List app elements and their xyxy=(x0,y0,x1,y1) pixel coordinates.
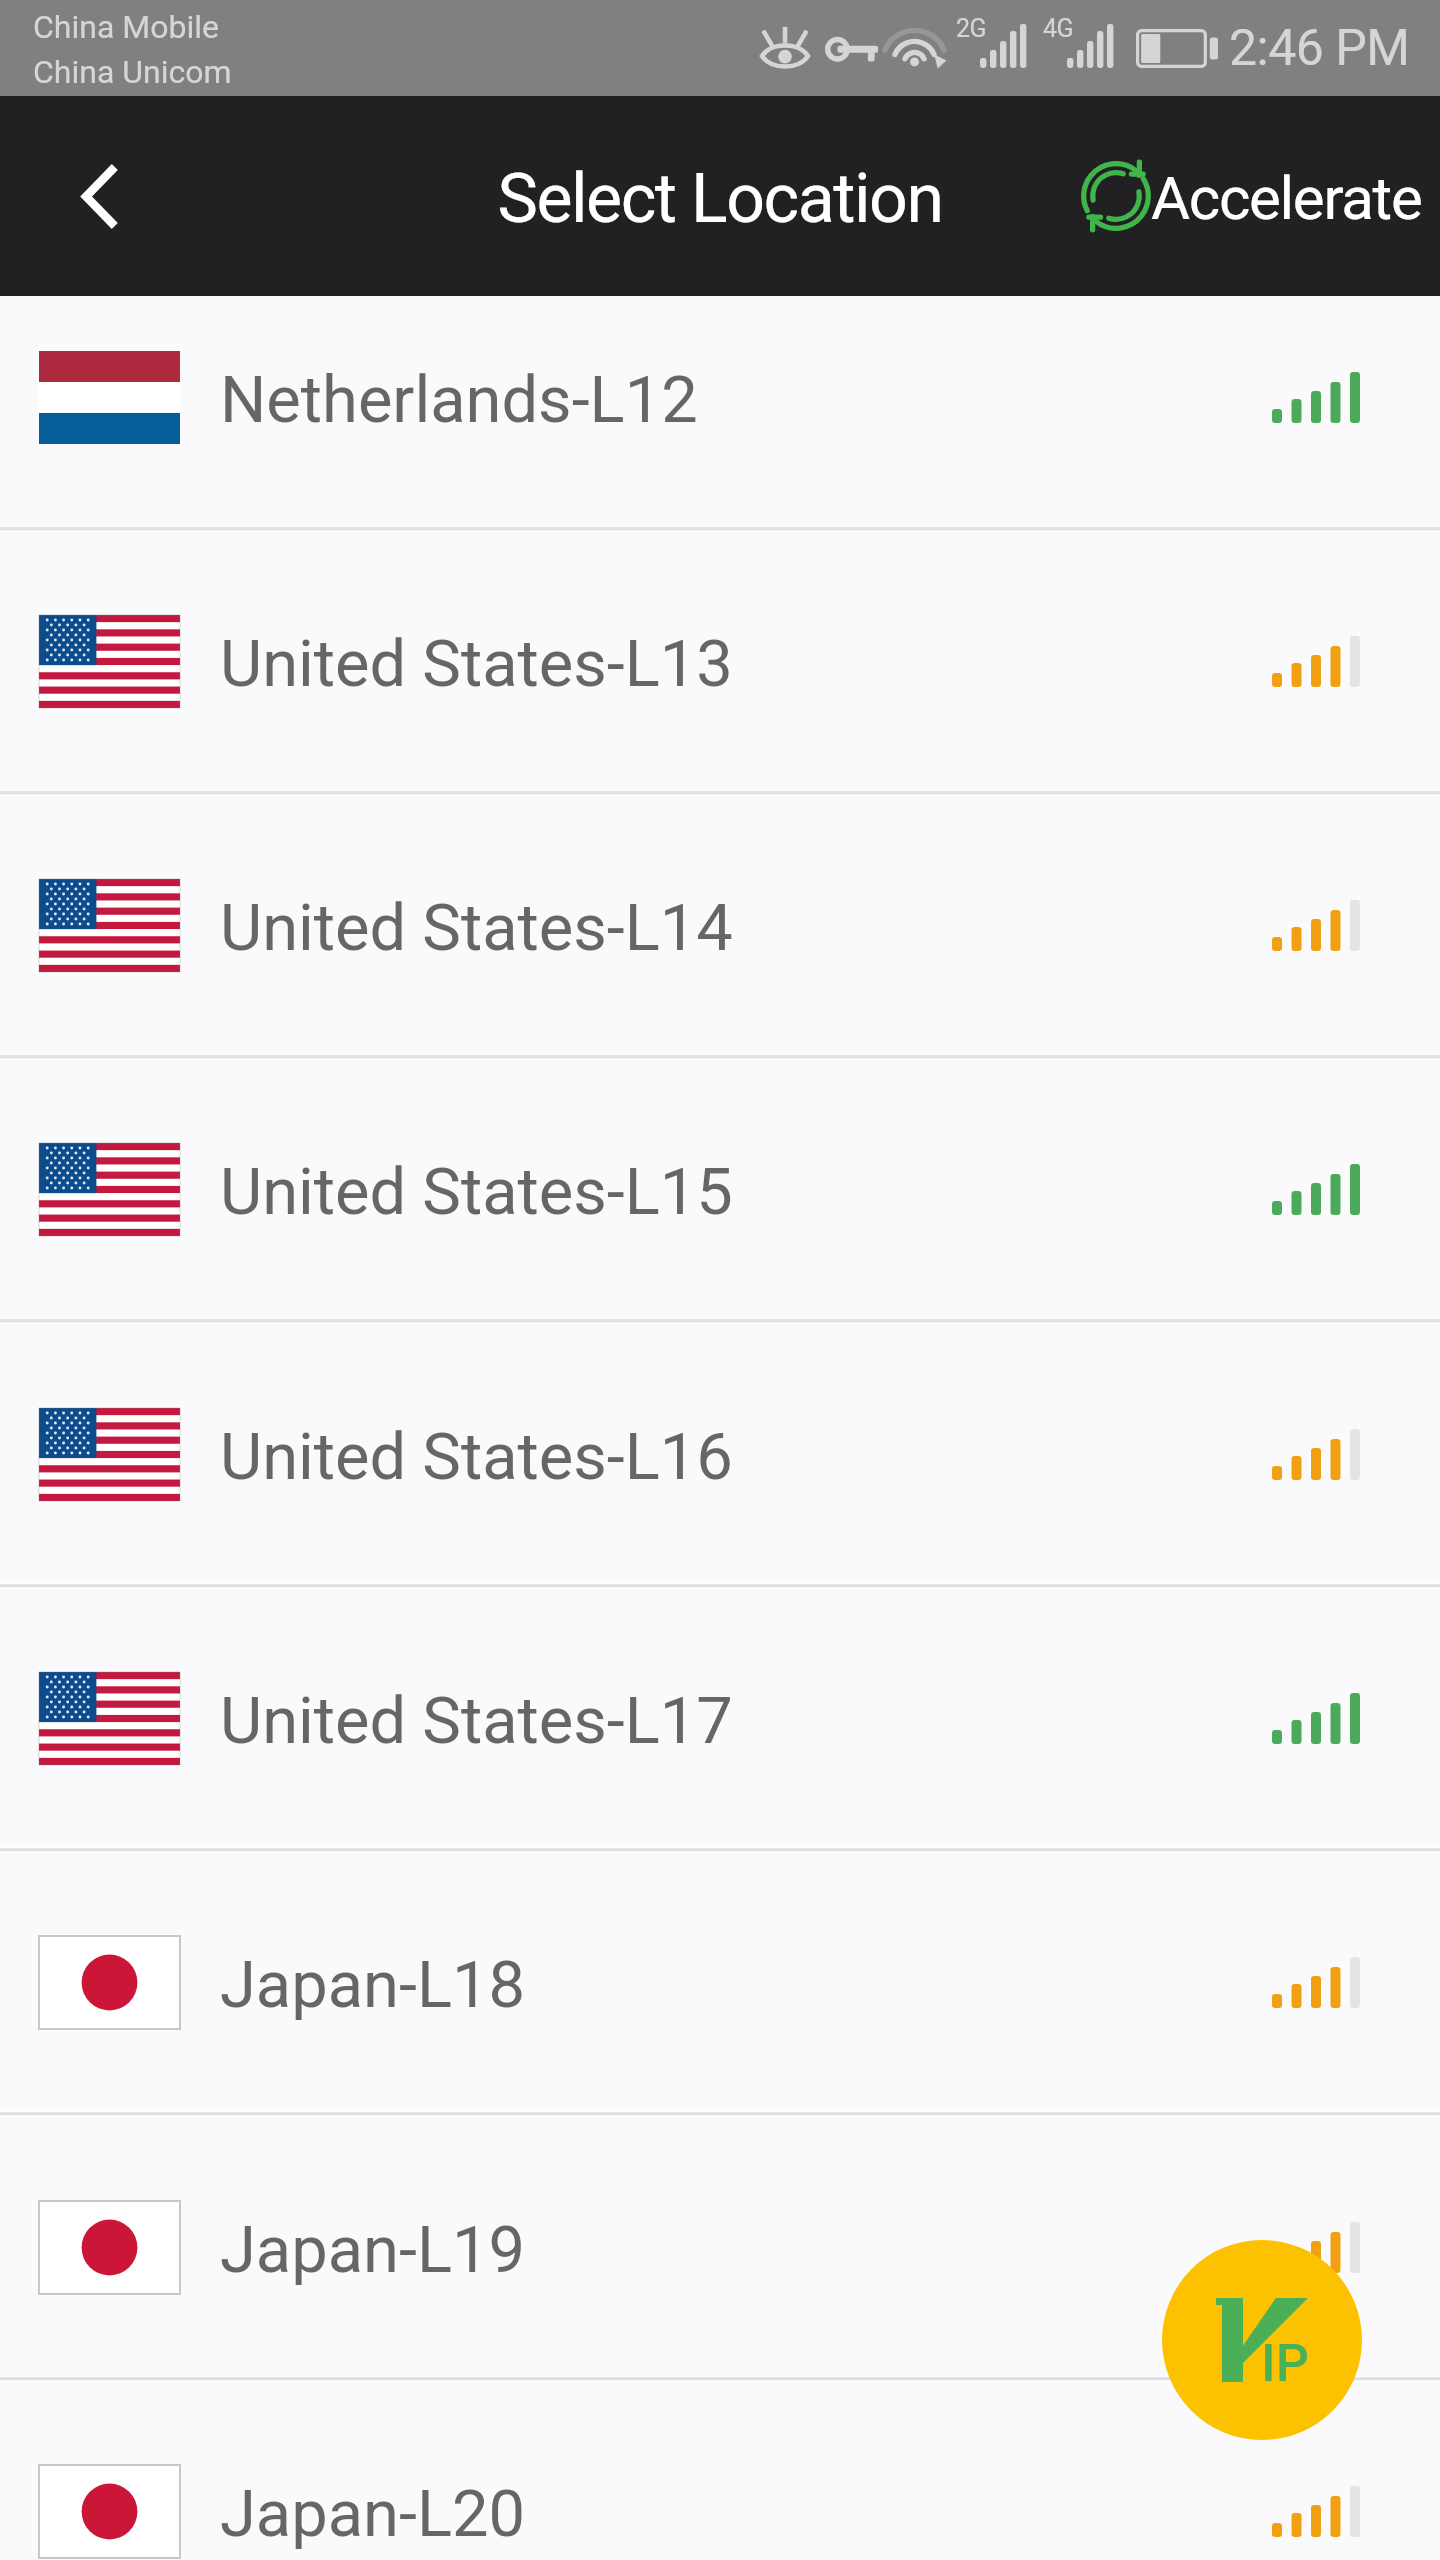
button[interactable]: United States-L17 xyxy=(0,1586,1440,1850)
button[interactable]: Japan-L18 xyxy=(0,1850,1440,2114)
staticText: Japan-L20 xyxy=(220,2476,526,2552)
button[interactable]: United States-L15 xyxy=(0,1057,1440,1321)
button[interactable]: United States-L13 xyxy=(0,529,1440,793)
staticText: 2:46 PM xyxy=(1229,19,1410,78)
staticText: IP xyxy=(1261,2333,1309,2394)
staticText: 4G xyxy=(1043,14,1074,43)
staticText: United States-L14 xyxy=(220,890,733,966)
button[interactable]: United States-L16 xyxy=(0,1322,1440,1586)
staticText: China Mobile xyxy=(33,8,219,46)
staticText: Japan-L19 xyxy=(220,2212,526,2288)
staticText: Netherlands-L12 xyxy=(220,362,698,438)
button[interactable]: Accelerate xyxy=(1071,96,1440,296)
staticText: 2G xyxy=(956,14,987,43)
staticText: United States-L13 xyxy=(220,626,733,702)
staticText: United States-L16 xyxy=(220,1419,733,1495)
button[interactable]: Japan-L19 xyxy=(0,2115,1440,2379)
button[interactable]: Japan-L20 xyxy=(0,2379,1440,2560)
button[interactable]: Netherlands-L12 xyxy=(0,296,1440,529)
button[interactable]: VIP xyxy=(1162,2240,1362,2440)
staticText: Select Location xyxy=(497,159,943,239)
button[interactable]: United States-L14 xyxy=(0,793,1440,1057)
staticText: Accelerate xyxy=(1151,163,1422,233)
staticText: United States-L15 xyxy=(220,1154,733,1230)
staticText: United States-L17 xyxy=(220,1683,733,1759)
staticText: Japan-L18 xyxy=(220,1947,526,2023)
button[interactable]: Back xyxy=(0,96,200,296)
staticText: China Unicom xyxy=(33,53,232,91)
